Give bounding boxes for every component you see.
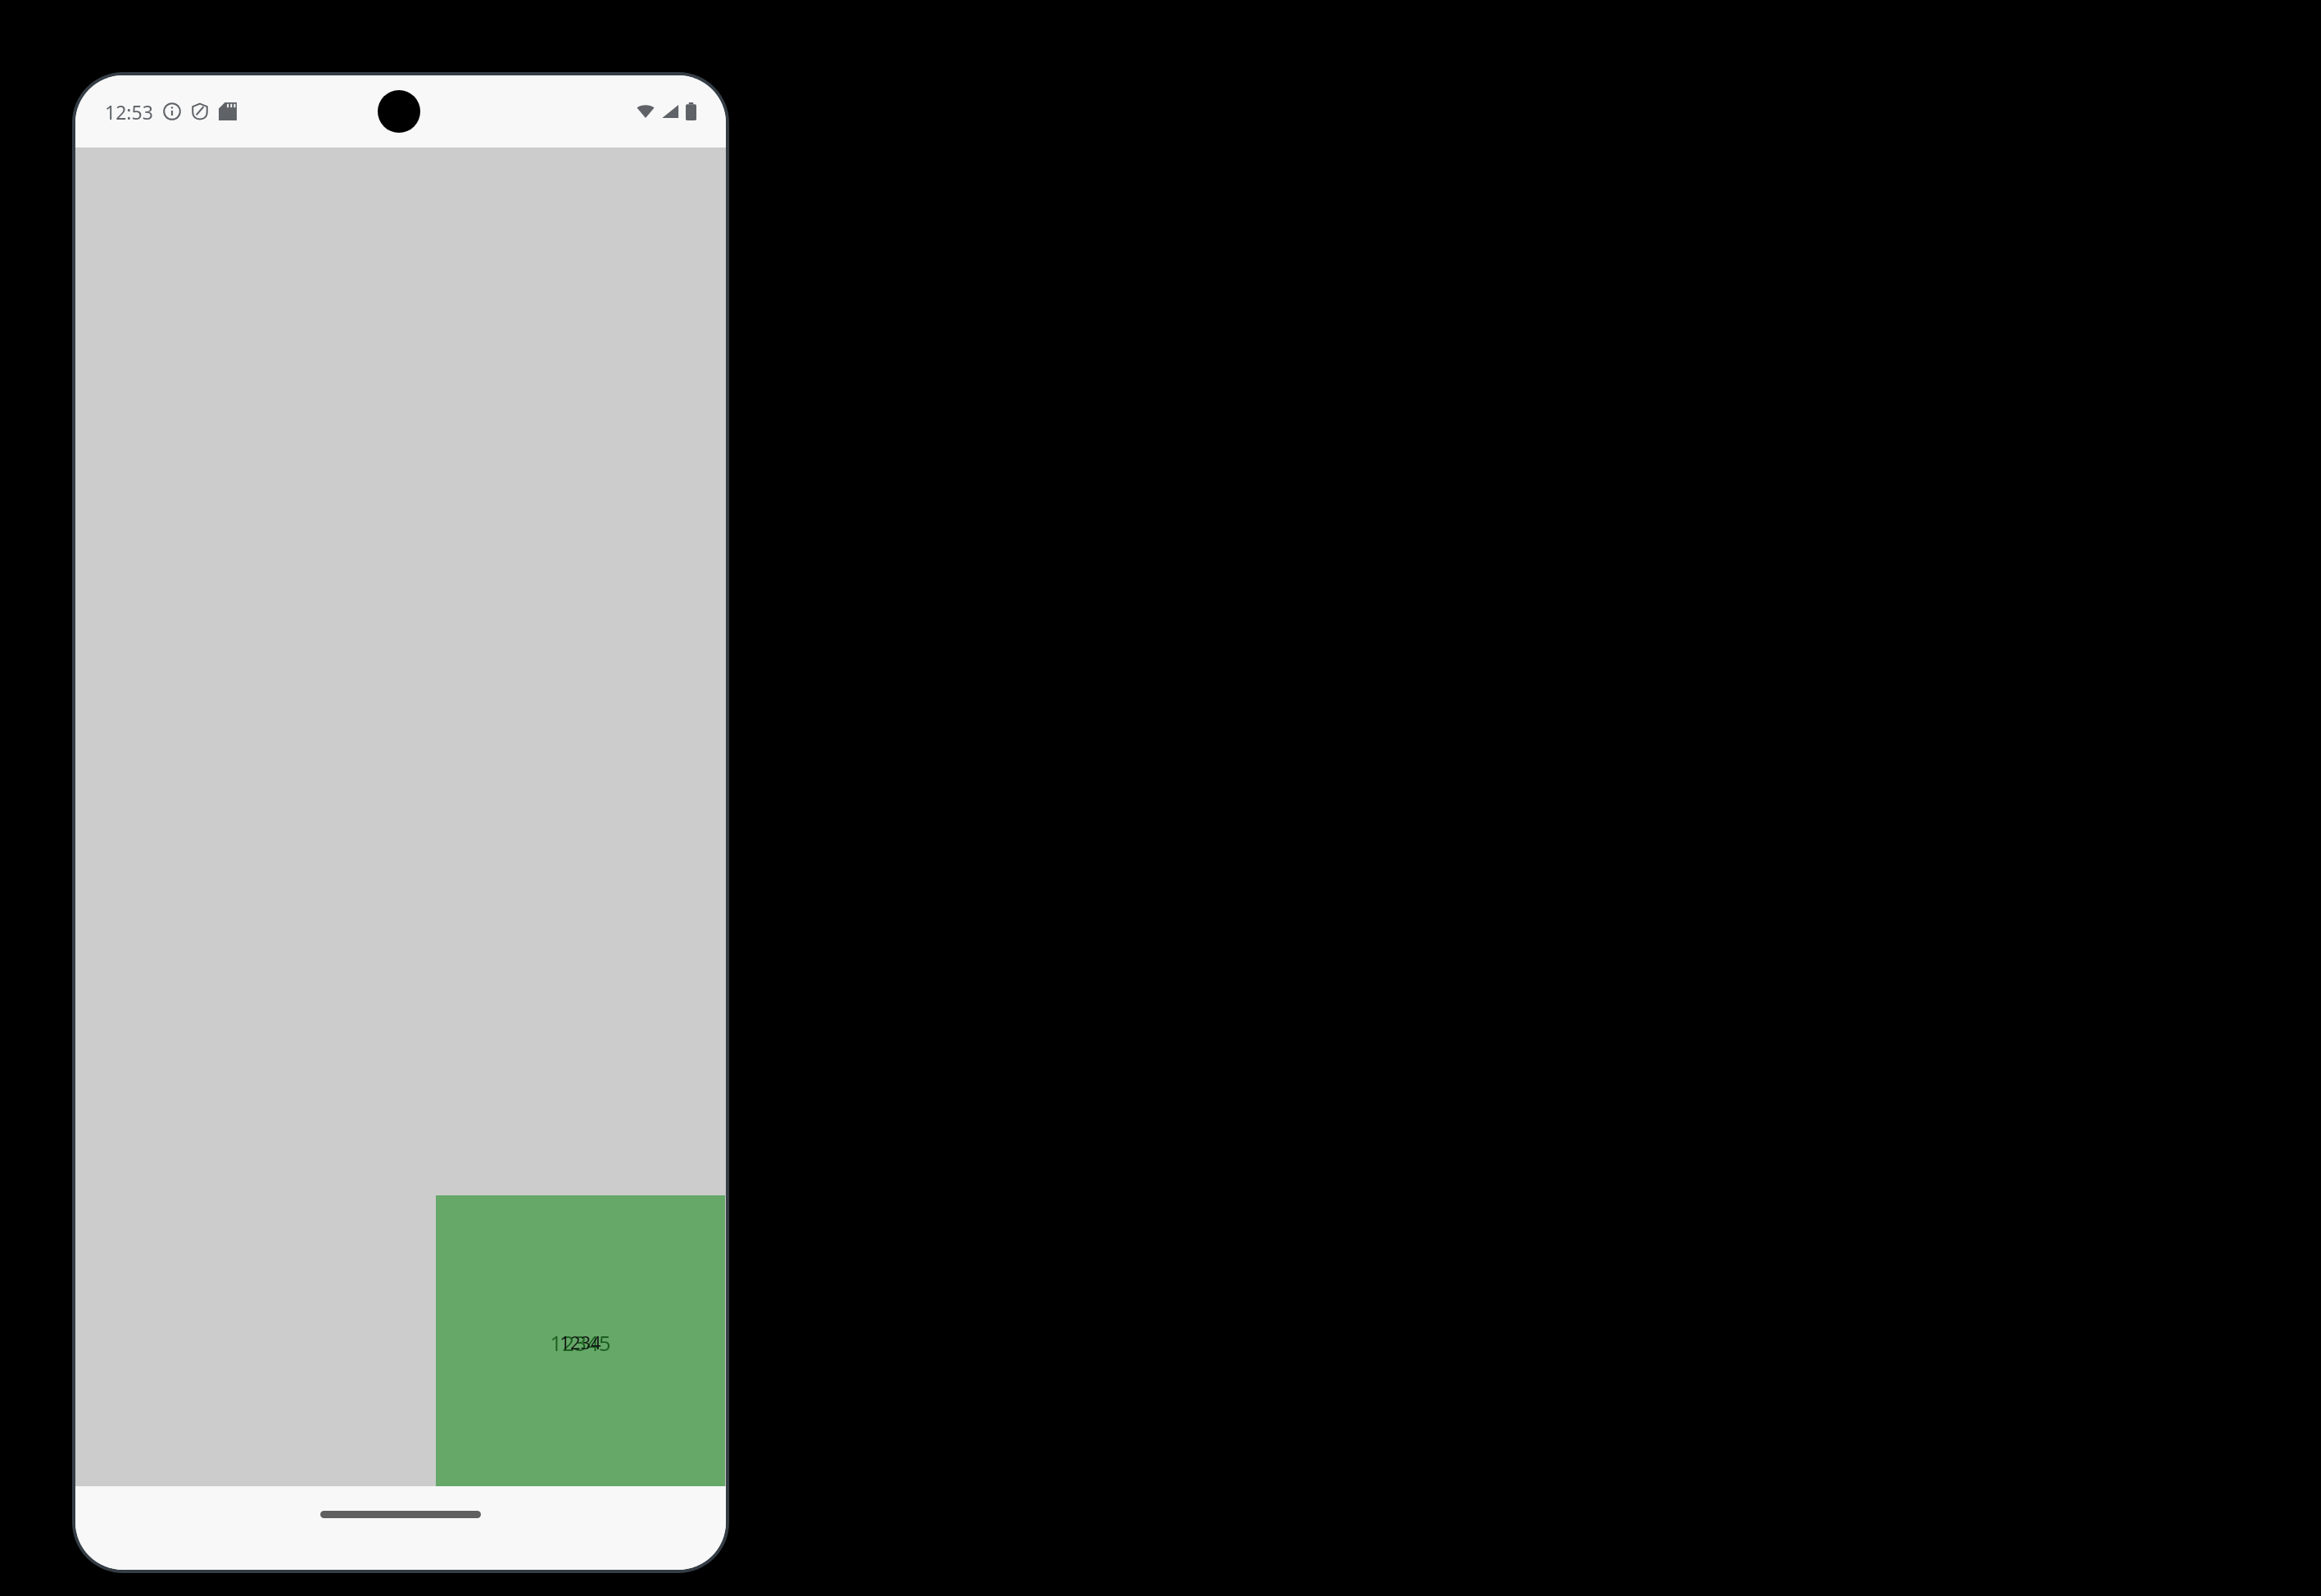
staticText: 12345 [550,1328,611,1357]
staticText: 1234 [560,1330,601,1354]
button[interactable]: Home gesture bar [320,1511,481,1518]
staticText: 12:53 [105,99,153,125]
button[interactable]: 12345 [436,1195,725,1489]
